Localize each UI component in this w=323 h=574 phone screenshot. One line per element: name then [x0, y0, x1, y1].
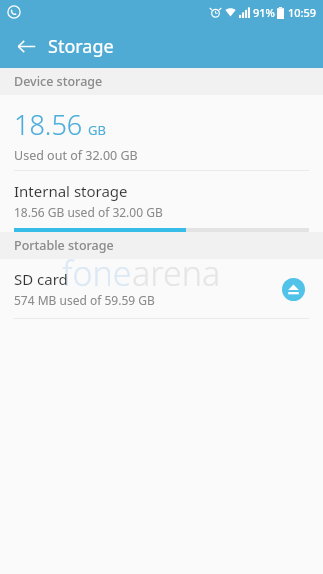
staticText: 18.56 GB used of 32.00 GB — [14, 204, 163, 220]
button[interactable]: SD card — [0, 259, 323, 318]
button[interactable]: Eject SD card — [275, 271, 311, 307]
staticText: fone — [62, 250, 132, 296]
button[interactable]: Internal storage — [0, 171, 323, 232]
staticText: 10:59 — [288, 5, 317, 20]
staticText: GB — [88, 121, 106, 139]
button[interactable]: 18.56 — [0, 95, 323, 170]
staticText: Storage — [48, 34, 114, 59]
staticText: Portable storage — [14, 237, 114, 254]
staticText: SD card — [14, 269, 68, 289]
staticText: 18.56 — [14, 106, 83, 143]
staticText: Used out of 32.00 GB — [14, 147, 138, 164]
staticText: 91% — [253, 5, 275, 20]
staticText: Internal storage — [14, 181, 128, 201]
staticText: arena — [132, 250, 221, 296]
staticText: 574 MB used of 59.59 GB — [14, 292, 155, 308]
staticText: Device storage — [14, 73, 103, 90]
button[interactable]: Back — [8, 28, 44, 64]
